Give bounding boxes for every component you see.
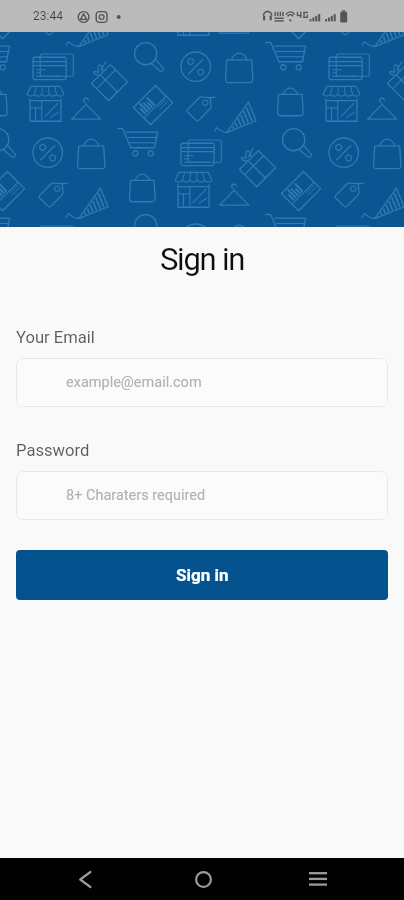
staticText: 8+ Charaters required [66,487,206,504]
staticText: example@email.com [66,374,202,391]
staticText: Your Email [16,328,95,347]
button[interactable]: Recent apps [294,858,342,900]
staticText: Sign in [176,565,229,585]
button[interactable]: example@email.com [16,358,388,407]
staticText: Password [16,441,90,460]
button[interactable]: Sign in [16,550,388,600]
staticText: 23:44 [33,9,63,23]
button[interactable]: Back [61,858,109,900]
button[interactable]: 8+ Charaters required [16,471,388,520]
staticText: Sign in [0,241,404,277]
button[interactable]: Home [179,858,227,900]
